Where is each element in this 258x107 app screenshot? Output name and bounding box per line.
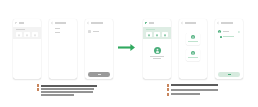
button[interactable] [24,32,30,37]
button[interactable] [146,32,152,37]
button[interactable] [218,29,240,34]
button[interactable] [220,34,238,39]
button[interactable]: Add person [154,47,161,54]
button[interactable] [32,32,38,37]
button[interactable] [16,32,22,37]
button[interactable] [186,49,200,61]
button[interactable] [162,32,168,37]
button[interactable] [88,29,110,34]
button[interactable] [49,27,77,31]
button[interactable] [186,33,200,45]
button[interactable] [154,32,160,37]
button[interactable] [218,72,240,77]
button[interactable] [49,31,77,35]
button[interactable] [88,72,110,77]
button[interactable]: Next step [118,44,135,51]
